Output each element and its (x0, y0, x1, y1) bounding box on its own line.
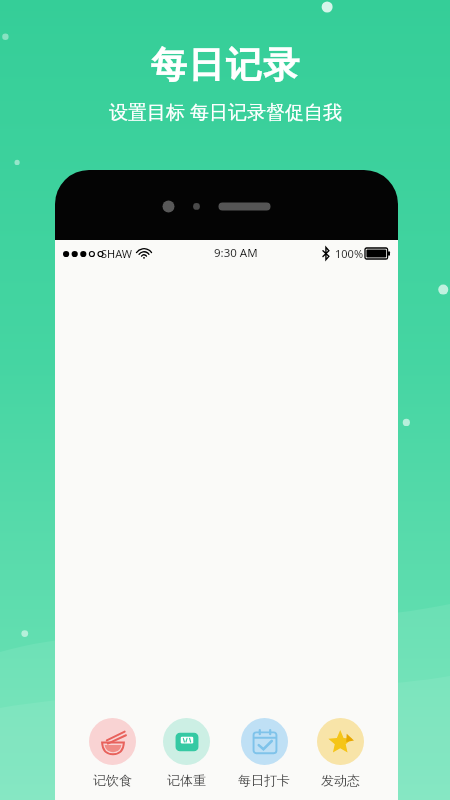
button[interactable]: 记体重 (157, 716, 216, 790)
button[interactable]: 每日打卡 (232, 716, 296, 790)
staticText: 记体重 (167, 772, 206, 788)
staticText: SHAW (101, 246, 133, 261)
staticText: 记饮食 (93, 772, 132, 788)
button[interactable]: 记饮食 (83, 716, 142, 790)
button[interactable]: 发动态 (311, 716, 370, 790)
staticText: 9:30 AM (214, 245, 258, 261)
staticText: 每日打卡 (238, 772, 290, 788)
staticText: 发动态 (321, 772, 360, 788)
staticText: 每日记录 (150, 42, 300, 87)
staticText: 设置目标 每日记录督促自我 (109, 99, 342, 125)
staticText: 100% (335, 246, 364, 261)
